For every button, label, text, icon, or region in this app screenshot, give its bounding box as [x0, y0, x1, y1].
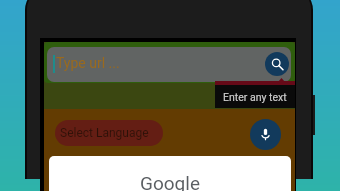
staticText: Google [140, 172, 200, 191]
staticText: Enter any text [223, 91, 287, 103]
button[interactable]: Search [265, 52, 289, 76]
staticText: Type url ... [56, 55, 120, 71]
button[interactable]: Type url ... [47, 47, 291, 82]
button[interactable]: Voice search [250, 119, 281, 150]
button[interactable]: Select Language [55, 120, 163, 146]
staticText: Select Language [60, 126, 149, 140]
